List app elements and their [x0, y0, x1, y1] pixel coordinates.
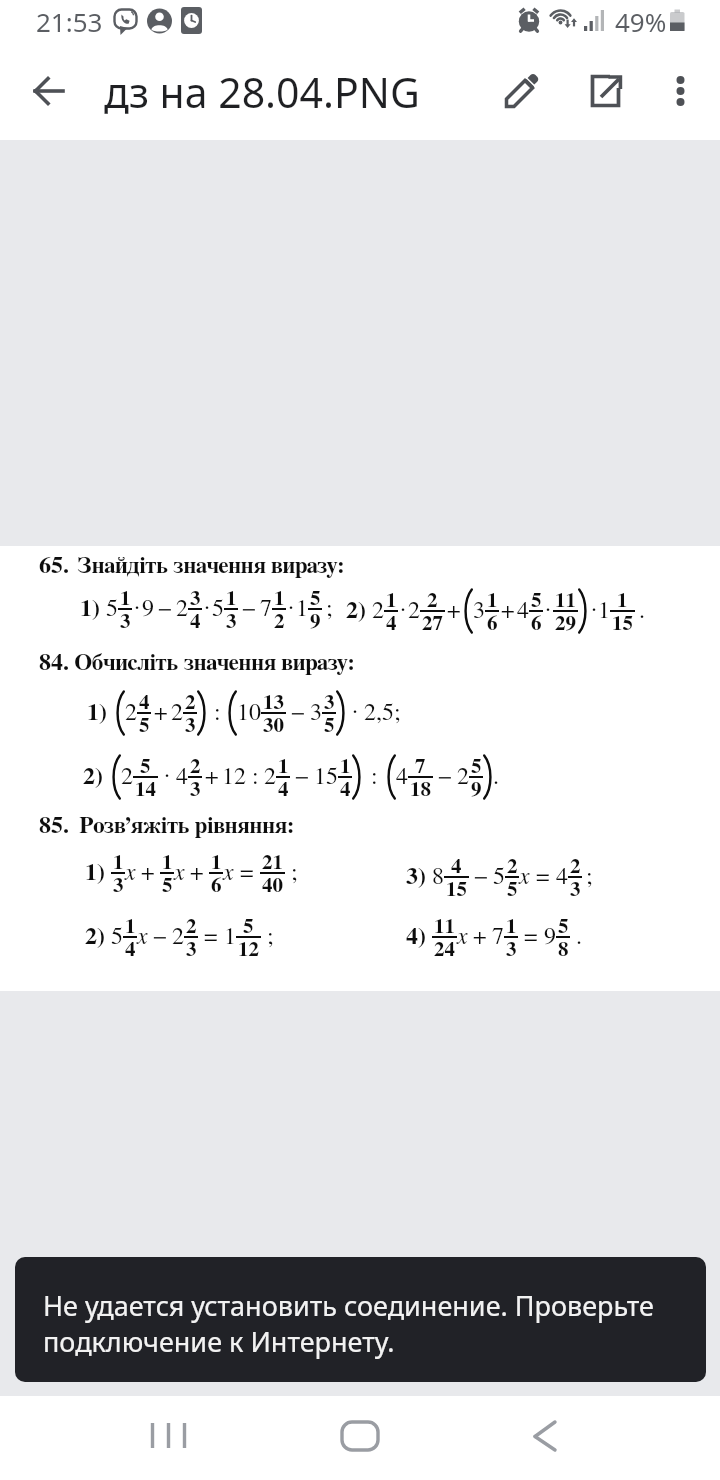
staticText: − [474, 865, 488, 889]
staticText: 4 [125, 939, 136, 960]
staticText: 1 [278, 756, 289, 777]
staticText: 5 [507, 879, 518, 900]
staticText: 4 [396, 765, 408, 789]
staticText: 5 [140, 756, 151, 777]
staticText: 2 [457, 765, 469, 789]
staticText: 9 [310, 611, 321, 632]
staticText: 1 [598, 599, 610, 623]
staticText: 4 [386, 613, 397, 634]
staticText: 1 [506, 916, 517, 937]
staticText: 15 [314, 765, 338, 789]
staticText: x [125, 861, 136, 885]
staticText: ; [326, 597, 332, 621]
staticText: · [400, 599, 406, 623]
staticText: 3 [310, 701, 322, 725]
staticText: + [501, 599, 515, 623]
staticText: 11 [555, 590, 576, 611]
button[interactable]: Edit [489, 58, 555, 124]
staticText: 3 [185, 715, 196, 736]
staticText: 14 [135, 779, 156, 800]
staticText: 7 [260, 597, 272, 621]
staticText: + [190, 861, 204, 885]
staticText: 1 [162, 852, 173, 873]
staticText: 2) [346, 599, 366, 623]
staticText: 3 [324, 692, 335, 713]
staticText: − [158, 597, 172, 621]
staticText: + [154, 701, 168, 725]
staticText: 5 [531, 590, 542, 611]
staticText: · [134, 597, 140, 621]
staticText: 3 [120, 611, 131, 632]
staticText: 4 [278, 779, 289, 800]
staticText: 5 [162, 875, 173, 896]
staticText: 5 [243, 916, 254, 937]
staticText: 6 [531, 613, 542, 634]
staticText: = [536, 865, 550, 889]
staticText: 13 [263, 692, 284, 713]
staticText: 6 [487, 613, 498, 634]
staticText: 3 [570, 879, 581, 900]
staticText: 3 [190, 588, 201, 609]
staticText: : [214, 701, 220, 725]
staticText: 40 [262, 875, 283, 896]
staticText: 2) [85, 925, 105, 949]
button[interactable]: Open in new window [574, 58, 640, 124]
staticText: 6 [211, 875, 222, 896]
staticText: 2 [274, 611, 285, 632]
staticText: 3 [226, 611, 237, 632]
staticText: 1 [274, 588, 285, 609]
staticText: 27 [422, 613, 443, 634]
staticText: . [639, 599, 645, 623]
staticText: 29 [555, 613, 576, 634]
staticText: 2 [264, 765, 276, 789]
staticText: 24 [434, 939, 455, 960]
staticText: = [204, 925, 218, 949]
staticText: : [252, 765, 258, 789]
staticText: 1 [617, 590, 628, 611]
staticText: 1) [87, 701, 107, 725]
staticText: Знайдіть значення виразу: [77, 555, 345, 578]
staticText: 9 [544, 925, 556, 949]
staticText: 2,5; [364, 701, 400, 725]
staticText: 4 [139, 692, 150, 713]
staticText: 1) [85, 861, 105, 885]
staticText: 2 [408, 599, 420, 623]
staticText: 1 [113, 852, 124, 873]
staticText: Не удается установить соединение. Провер… [43, 1287, 665, 1360]
staticText: 5 [139, 715, 150, 736]
button[interactable]: Не удается установить соединение. Провер… [15, 1257, 706, 1382]
button[interactable]: More options [647, 58, 713, 124]
staticText: 84. [39, 651, 69, 675]
staticText: 2 [121, 765, 133, 789]
button[interactable]: Recent apps [126, 1402, 214, 1474]
staticText: 8 [432, 865, 444, 889]
staticText: 2) [83, 765, 103, 789]
staticText: дз на 28.04.PNG [104, 64, 420, 120]
staticText: 4 [190, 611, 201, 632]
staticText: − [438, 765, 452, 789]
staticText: − [291, 701, 305, 725]
staticText: + [205, 765, 219, 789]
staticText: 1 [224, 925, 236, 949]
staticText: 12 [238, 939, 259, 960]
staticText: Обчисліть значення виразу: [74, 652, 355, 675]
staticText: 1 [125, 916, 136, 937]
button[interactable]: Back [15, 57, 83, 125]
staticText: − [295, 765, 309, 789]
button[interactable]: Back [501, 1402, 589, 1474]
staticText: · [591, 599, 597, 623]
staticText: 5 [558, 916, 569, 937]
staticText: ; [267, 925, 273, 949]
staticText: 5 [471, 756, 482, 777]
staticText: . [493, 765, 499, 789]
staticText: 2 [186, 916, 197, 937]
staticText: · [164, 765, 170, 789]
staticText: 2 [176, 597, 188, 621]
button[interactable]: Home [316, 1402, 404, 1474]
staticText: 3) [406, 865, 426, 889]
staticText: ; [291, 861, 297, 885]
staticText: 3 [506, 939, 517, 960]
staticText: 30 [263, 715, 284, 736]
staticText: x [223, 861, 234, 885]
staticText: x [457, 925, 468, 949]
